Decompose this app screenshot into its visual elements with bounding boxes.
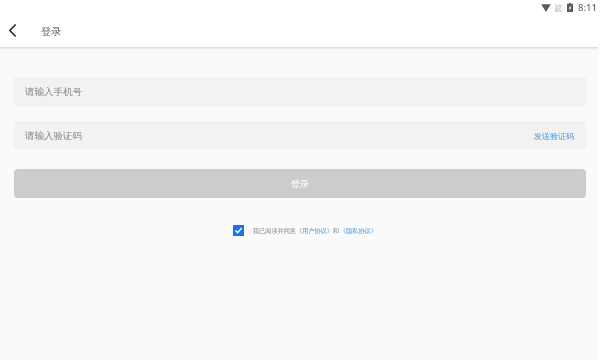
button[interactable]: Agree to terms: [233, 225, 244, 236]
staticText: 发送验证码: [534, 131, 574, 141]
staticText: 登录: [41, 25, 62, 38]
staticText: 登录: [291, 178, 309, 189]
button[interactable]: 发送验证码: [522, 121, 586, 150]
button[interactable]: 《隐私协议》: [340, 227, 377, 235]
staticText: 请输入手机号: [25, 86, 82, 98]
staticText: 和: [333, 227, 340, 235]
staticText: 8:11: [578, 1, 597, 14]
staticText: 请输入验证码: [25, 130, 82, 142]
button[interactable]: 《用户协议》: [296, 227, 333, 235]
button[interactable]: 请输入验证码: [14, 121, 586, 150]
button[interactable]: 请输入手机号: [14, 77, 586, 106]
staticText: 我已阅读并同意: [253, 227, 296, 235]
button[interactable]: Back: [0, 16, 26, 44]
